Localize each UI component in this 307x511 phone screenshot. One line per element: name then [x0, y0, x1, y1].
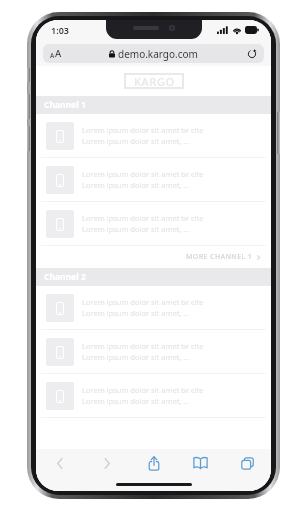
button[interactable]: Share [130, 449, 177, 477]
button[interactable]: A [43, 44, 264, 63]
staticText: Lorem ipsum dolor sit amet, ... [82, 352, 190, 362]
button[interactable]: MORE CHANNEL 1 [36, 246, 271, 268]
staticText: A [55, 47, 62, 60]
staticText: 1:03 [51, 24, 69, 36]
staticText: Lorem ipsum dolor sit amet, ... [82, 224, 190, 234]
staticText: demo.kargo.com [118, 47, 198, 61]
staticText: Lorem ipsum dolor sit amet br cite [82, 297, 204, 307]
button[interactable]: Bookmarks [177, 449, 224, 477]
button[interactable]: Lorem ipsum dolor sit amet br cite [36, 330, 271, 373]
staticText: Lorem ipsum dolor sit amet, ... [82, 308, 190, 318]
button[interactable]: Tabs [224, 449, 271, 477]
staticText: Lorem ipsum dolor sit amet, ... [82, 136, 190, 146]
button[interactable]: Forward [83, 449, 130, 477]
button[interactable]: Back [36, 449, 83, 477]
button[interactable]: Lorem ipsum dolor sit amet br cite [36, 114, 271, 157]
staticText: Lorem ipsum dolor sit amet br cite [82, 213, 204, 223]
button[interactable]: KARGO [124, 73, 184, 89]
staticText: Lorem ipsum dolor sit amet, ... [82, 396, 190, 406]
staticText: Lorem ipsum dolor sit amet, ... [82, 180, 190, 190]
staticText: MORE CHANNEL 1 [186, 252, 253, 262]
button[interactable]: Channel 1 [36, 96, 271, 114]
staticText: KARGO [134, 74, 175, 89]
button[interactable]: Lorem ipsum dolor sit amet br cite [36, 374, 271, 417]
button[interactable]: Channel 2 [36, 268, 271, 286]
button[interactable]: Lorem ipsum dolor sit amet br cite [36, 202, 271, 245]
staticText: Channel 2 [44, 271, 86, 283]
staticText: Channel 1 [44, 99, 86, 111]
staticText: Lorem ipsum dolor sit amet br cite [82, 385, 204, 395]
button[interactable]: Lorem ipsum dolor sit amet br cite [36, 158, 271, 201]
staticText: Lorem ipsum dolor sit amet br cite [82, 169, 204, 179]
staticText: Lorem ipsum dolor sit amet br cite [82, 125, 204, 135]
staticText: Lorem ipsum dolor sit amet br cite [82, 341, 204, 351]
button[interactable]: Reload [246, 48, 258, 60]
staticText: A [50, 51, 55, 60]
button[interactable]: Lorem ipsum dolor sit amet br cite [36, 286, 271, 329]
